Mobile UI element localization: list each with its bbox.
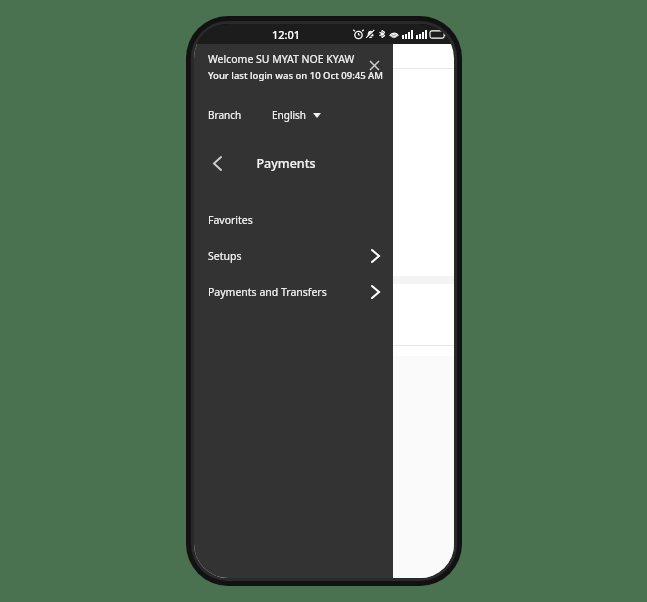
button[interactable]: Setups (194, 238, 393, 274)
button[interactable]: Branch (208, 104, 242, 126)
staticText: English (272, 108, 307, 122)
button[interactable]: English (272, 104, 321, 126)
button[interactable]: Back (202, 148, 232, 178)
button[interactable]: Favorites (194, 202, 393, 238)
button[interactable]: Payments and Transfers (194, 274, 393, 310)
staticText: 12:01 (272, 27, 301, 42)
staticText: Payments and Transfers (208, 285, 327, 299)
staticText: Branch (208, 108, 242, 122)
staticText: My Net Worth (200, 79, 291, 97)
staticText: Welcome SU MYAT NOE KYAW (208, 52, 355, 66)
staticText: MMK1,234,567.89 (212, 246, 314, 262)
button[interactable]: Close (361, 52, 387, 78)
staticText: Recent Activities (201, 294, 306, 311)
staticText: Setups (208, 249, 242, 263)
staticText: Payments (256, 155, 316, 172)
staticText: Favorites (208, 213, 253, 227)
staticText: Your last login was on 10 Oct 09:45 AM (208, 69, 384, 82)
